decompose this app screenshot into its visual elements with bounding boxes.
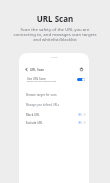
staticText: 5 [79,121,81,124]
staticText: URL Scan [0,13,110,24]
staticText: Browse target for scan [26,93,57,97]
staticText: Scan the safety of the URL you are conne… [9,26,101,42]
button[interactable]: Back [22,65,31,74]
button[interactable]: Use URL Scan [19,74,89,86]
button[interactable]: Scan history [77,65,86,74]
button[interactable]: Exclude URL [19,119,89,127]
staticText: Use URL Scan [27,77,46,81]
staticText: Blocks you from malicious sites [27,80,57,83]
button[interactable]: Block URL [19,111,89,119]
staticText: Block URL [26,113,40,117]
staticText: Manage your defined URLs [26,103,59,107]
staticText: Exclude URL [26,121,43,125]
staticText: 3 [79,113,81,116]
staticText: URL Scan [30,68,45,72]
